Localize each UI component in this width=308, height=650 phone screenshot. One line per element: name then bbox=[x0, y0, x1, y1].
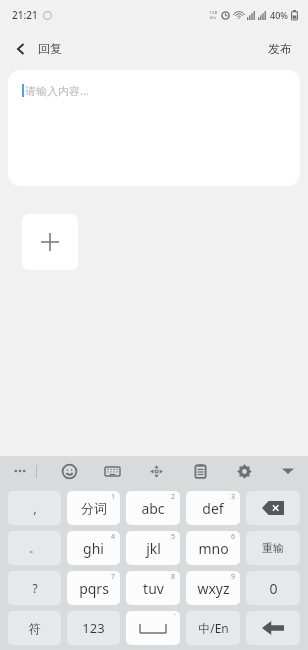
button[interactable]: , bbox=[8, 491, 61, 525]
button[interactable]: Move cursor bbox=[146, 461, 167, 482]
staticText: 6 bbox=[231, 532, 236, 542]
staticText: 分词 bbox=[81, 500, 107, 516]
button[interactable]: 请输入内容... bbox=[8, 70, 300, 186]
staticText: 重输 bbox=[262, 541, 284, 555]
other: Back bbox=[14, 42, 28, 56]
staticText: mno bbox=[198, 539, 229, 558]
staticText: 123 bbox=[82, 619, 105, 637]
staticText: ? bbox=[32, 580, 38, 596]
button[interactable]: Enter bbox=[246, 611, 300, 645]
button[interactable]: Space bbox=[126, 611, 180, 645]
staticText: 9 bbox=[231, 572, 236, 582]
staticText: 发布 bbox=[268, 41, 292, 56]
staticText: 。 bbox=[29, 541, 40, 555]
button[interactable]: tuv bbox=[126, 571, 180, 605]
staticText: 符 bbox=[29, 621, 41, 636]
button[interactable]: Clipboard bbox=[190, 461, 211, 482]
button[interactable]: Keyboard bbox=[102, 461, 123, 482]
staticText: 21:21 bbox=[12, 8, 38, 22]
staticText: 7 bbox=[111, 572, 116, 582]
staticText: 40% bbox=[270, 9, 288, 21]
staticText: wxyz bbox=[197, 579, 230, 598]
staticText: 4 bbox=[111, 532, 116, 542]
button[interactable]: 重输 bbox=[246, 531, 300, 565]
button[interactable]: jkl bbox=[126, 531, 180, 565]
staticText: 中/En bbox=[198, 620, 229, 636]
button[interactable]: 分词 bbox=[67, 491, 120, 525]
button[interactable]: ? bbox=[8, 571, 61, 605]
staticText: K/s bbox=[210, 15, 216, 20]
staticText: , bbox=[33, 500, 37, 516]
staticText: 8 bbox=[171, 572, 176, 582]
staticText: 0 bbox=[269, 579, 278, 598]
staticText: tuv bbox=[143, 579, 164, 598]
button[interactable]: 发布 bbox=[252, 33, 308, 64]
staticText: 请输入内容... bbox=[25, 83, 89, 98]
staticText: 5 bbox=[171, 532, 176, 542]
button[interactable]: Backspace bbox=[246, 491, 300, 525]
staticText: 2 bbox=[171, 492, 176, 502]
button[interactable]: 符 bbox=[8, 611, 61, 645]
button[interactable]: More bbox=[10, 465, 30, 477]
staticText: 3 bbox=[231, 492, 236, 502]
button[interactable]: pqrs bbox=[67, 571, 120, 605]
button[interactable]: Back bbox=[0, 35, 74, 62]
button[interactable]: 0 bbox=[246, 571, 300, 605]
button[interactable]: wxyz bbox=[186, 571, 240, 605]
button[interactable]: Hide keyboard bbox=[278, 463, 298, 479]
button[interactable]: mno bbox=[186, 531, 240, 565]
staticText: abc bbox=[141, 499, 165, 518]
button[interactable]: Emoji bbox=[59, 461, 80, 482]
staticText: jkl bbox=[146, 539, 161, 558]
button[interactable]: ghi bbox=[67, 531, 120, 565]
staticText: ghi bbox=[83, 539, 104, 558]
button[interactable]: 中/En bbox=[186, 611, 240, 645]
button[interactable]: 123 bbox=[67, 611, 120, 645]
staticText: 1 bbox=[111, 492, 116, 502]
staticText: pqrs bbox=[79, 579, 109, 598]
staticText: def bbox=[202, 499, 224, 518]
button[interactable]: 。 bbox=[8, 531, 61, 565]
button[interactable]: def bbox=[186, 491, 240, 525]
button[interactable]: abc bbox=[126, 491, 180, 525]
button[interactable]: Settings bbox=[234, 461, 255, 482]
staticText: 回复 bbox=[38, 41, 62, 56]
button[interactable]: Add image bbox=[22, 214, 78, 270]
staticText: 1.58 bbox=[209, 10, 217, 15]
staticText: ` bbox=[174, 612, 176, 622]
